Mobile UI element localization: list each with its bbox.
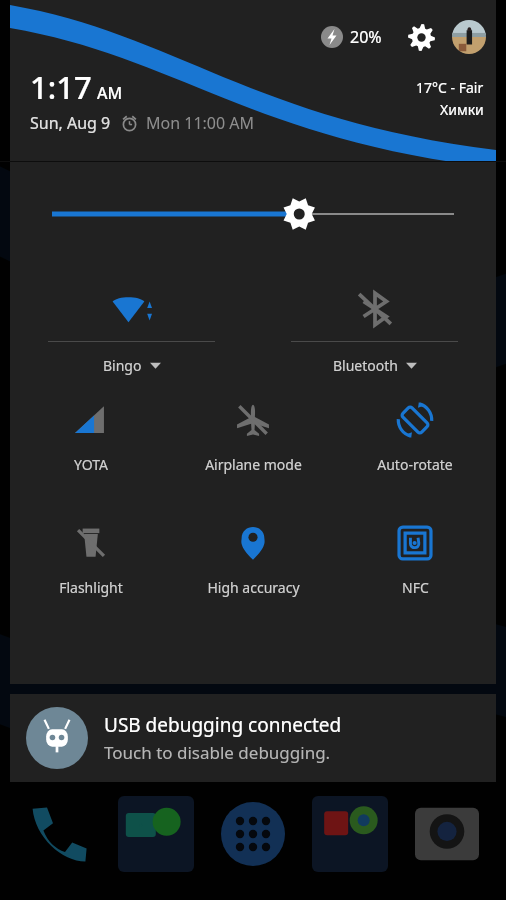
staticText: Airplane mode [205,455,302,474]
staticText: 20% [350,26,382,48]
staticText: YOTA [74,455,108,474]
button[interactable]: 17°C - Fair [416,78,484,119]
button[interactable]: 1:17 [30,66,123,108]
button[interactable]: Google folder [312,796,388,872]
button[interactable]: YOTA [10,383,172,474]
staticText: AM [97,82,123,104]
button[interactable]: Flashlight [10,506,172,597]
staticText: High accuracy [207,578,300,597]
button[interactable]: Sun, Aug 9 [30,112,255,134]
button[interactable]: USB debugging connected [10,694,496,782]
button[interactable]: Phone [21,796,97,872]
button[interactable]: Camera [409,796,485,872]
button[interactable]: Brightness [10,162,496,265]
staticText: Sun, Aug 9 [30,112,111,134]
staticText: Touch to disable debugging. [104,741,331,764]
button[interactable]: Apps [215,796,291,872]
button[interactable]: Messaging folder [118,796,194,872]
staticText: NFC [402,578,429,597]
staticText: Bingo [103,356,142,375]
staticText: Flashlight [59,578,123,597]
button[interactable]: Bluetooth [253,265,496,375]
staticText: USB debugging connected [104,712,342,738]
button[interactable]: Settings [404,20,438,54]
button[interactable]: Bingo [10,265,253,375]
staticText: Химки [440,100,484,119]
button[interactable]: High accuracy [172,506,334,597]
button[interactable]: Auto-rotate [334,383,496,474]
staticText: Auto-rotate [377,455,453,474]
button[interactable]: Airplane mode [172,383,334,474]
button[interactable]: Battery 20 percent charging [319,26,384,48]
staticText: 1:17 [30,66,92,108]
staticText: Mon 11:00 AM [146,112,255,134]
staticText: Bluetooth [333,356,398,375]
button[interactable]: NFC [334,506,496,597]
staticText: 17°C - Fair [416,78,484,97]
button[interactable]: User profile [452,20,486,54]
